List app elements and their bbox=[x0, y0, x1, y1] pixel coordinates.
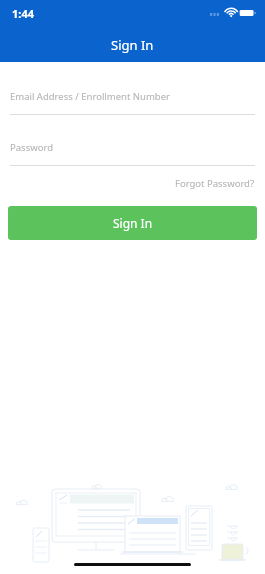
staticText: Sign In bbox=[113, 215, 153, 231]
staticText: 1:44 bbox=[12, 6, 34, 21]
staticText: Password bbox=[10, 141, 53, 154]
button[interactable]: Forgot Password? bbox=[165, 175, 265, 192]
staticText: Forgot Password? bbox=[175, 177, 255, 190]
other: Devices illustration bbox=[0, 476, 265, 566]
staticText: Email Address / Enrollment Number bbox=[10, 90, 170, 103]
button[interactable]: Email Address / Enrollment Number bbox=[0, 90, 265, 115]
button[interactable]: Sign In bbox=[8, 206, 257, 240]
button[interactable]: Password bbox=[0, 141, 265, 166]
other: Signal, Wi-Fi and battery status bbox=[210, 7, 256, 19]
staticText: Sign In bbox=[111, 36, 154, 54]
